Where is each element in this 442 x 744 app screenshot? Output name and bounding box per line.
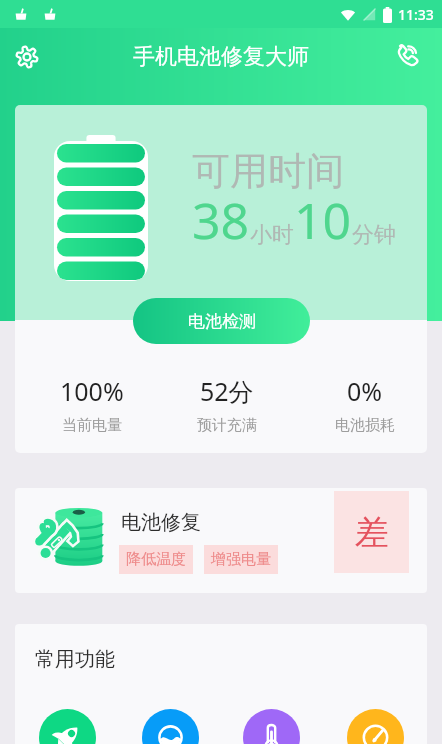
button[interactable]: Boost (39, 709, 96, 744)
staticText: 增强电量 (211, 550, 271, 569)
button[interactable]: Settings (6, 36, 48, 78)
staticText: 电池修复 (121, 510, 201, 535)
staticText: 降低温度 (126, 550, 186, 569)
button[interactable]: 电池检测 (133, 298, 310, 344)
staticText: 手机电池修复大师 (133, 43, 309, 71)
staticText: 0% (347, 374, 383, 408)
staticText: 小时 (250, 221, 294, 249)
staticText: 10 (294, 186, 352, 254)
staticText: 常用功能 (35, 647, 115, 672)
staticText: 预计充满 (197, 416, 257, 435)
staticText: 分钟 (352, 221, 396, 249)
staticText: 100% (60, 374, 124, 408)
staticText: 52分 (200, 374, 254, 408)
staticText: 电池损耗 (335, 416, 395, 435)
staticText: 差 (355, 511, 389, 554)
staticText: 当前电量 (62, 416, 122, 435)
staticText: 可用时间 (192, 147, 344, 195)
button[interactable]: Speed (347, 709, 404, 744)
button[interactable]: Cool (243, 709, 300, 744)
staticText: 38 (192, 186, 250, 254)
button[interactable]: Call (386, 36, 428, 78)
staticText: 电池检测 (188, 311, 256, 332)
staticText: 11:33 (398, 5, 434, 24)
button[interactable]: 电池修复 (15, 488, 427, 593)
button[interactable]: Clean (142, 709, 199, 744)
